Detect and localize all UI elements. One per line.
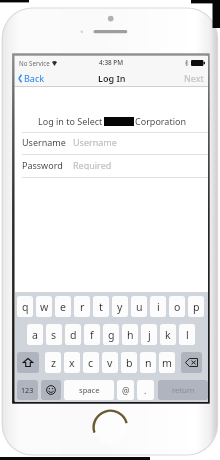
button[interactable]: Next [180, 72, 208, 84]
staticText: d [70, 328, 77, 342]
staticText: Back [24, 72, 45, 84]
staticText: Corporation [135, 115, 186, 127]
button[interactable]: x [64, 352, 80, 373]
button[interactable]: . [137, 380, 154, 400]
button[interactable]: p [188, 296, 204, 317]
staticText: return [172, 385, 195, 395]
staticText: Log in to Select [38, 115, 103, 127]
staticText: Log In [98, 72, 126, 84]
staticText: j [148, 328, 151, 342]
staticText: k [165, 328, 171, 342]
button[interactable]: o [169, 296, 185, 317]
staticText: v [107, 356, 113, 370]
button[interactable]: y [112, 296, 128, 317]
button[interactable]: b [121, 352, 137, 373]
staticText: w [40, 300, 49, 314]
button[interactable]: m [159, 352, 175, 373]
button[interactable]: l [179, 324, 195, 345]
button[interactable]: e [55, 296, 71, 317]
button[interactable]: h [122, 324, 138, 345]
button[interactable]: Password [15, 159, 208, 170]
staticText: h [127, 328, 134, 342]
staticText: No Service [19, 59, 50, 67]
button[interactable]: n [140, 352, 156, 373]
button[interactable]: f [84, 324, 100, 345]
button[interactable]: c [83, 352, 99, 373]
staticText: a [32, 328, 38, 342]
button[interactable]: w [36, 296, 52, 317]
staticText: o [174, 300, 181, 314]
button[interactable]: g [103, 324, 119, 345]
staticText: c [88, 356, 94, 370]
staticText: s [51, 328, 57, 342]
button[interactable]: 123 [17, 380, 38, 400]
staticText: l [186, 328, 189, 342]
staticText: Username [73, 136, 117, 147]
button[interactable]: Back [15, 72, 49, 84]
button[interactable]: v [102, 352, 118, 373]
staticText: q [22, 300, 29, 314]
staticText: Password [22, 159, 63, 170]
staticText: 4:38 PM [99, 58, 124, 67]
staticText: . [144, 385, 147, 396]
button[interactable]: k [160, 324, 176, 345]
staticText: 123 [21, 385, 34, 395]
staticText: @ [122, 385, 130, 396]
staticText: u [136, 300, 143, 314]
staticText: x [69, 356, 75, 370]
staticText: e [60, 300, 66, 314]
staticText: i [157, 300, 160, 314]
button[interactable]: q [17, 296, 33, 317]
button[interactable]: Shift [17, 352, 39, 373]
staticText: z [51, 356, 56, 370]
button[interactable]: Backspace [181, 352, 202, 373]
button[interactable]: i [150, 296, 166, 317]
staticText: Next [184, 72, 204, 84]
button[interactable]: @ [117, 380, 134, 400]
button[interactable]: u [131, 296, 147, 317]
button[interactable]: z [45, 352, 61, 373]
staticText: Required [73, 159, 112, 170]
button[interactable]: t [93, 296, 109, 317]
button[interactable]: r [74, 296, 90, 317]
staticText: space [79, 385, 100, 395]
button[interactable]: Username [15, 136, 208, 147]
button[interactable]: a [27, 324, 43, 345]
staticText: p [193, 300, 200, 314]
staticText: n [145, 356, 152, 370]
button[interactable]: Emoji keyboard [41, 380, 61, 400]
button[interactable]: j [141, 324, 157, 345]
staticText: y [117, 300, 123, 314]
button[interactable]: space [64, 380, 114, 400]
staticText: r [80, 300, 85, 314]
button[interactable]: d [65, 324, 81, 345]
button[interactable]: s [46, 324, 62, 345]
button[interactable]: return [158, 380, 208, 400]
staticText: t [99, 300, 103, 314]
staticText: m [162, 356, 172, 370]
staticText: f [90, 328, 94, 342]
staticText: Username [22, 136, 66, 147]
staticText: b [126, 356, 133, 370]
staticText: g [108, 328, 115, 342]
